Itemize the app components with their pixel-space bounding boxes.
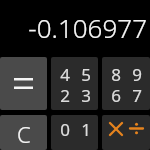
button[interactable]: 9 (126, 63, 147, 84)
button[interactable]: 4 (54, 63, 75, 84)
staticText: -0.106977 (28, 10, 147, 45)
button[interactable]: 0 (54, 118, 75, 139)
staticText: 7 (132, 84, 142, 105)
button[interactable]: 1 (75, 118, 96, 139)
button[interactable]: Equals (0, 57, 47, 110)
button[interactable]: 2 (54, 84, 75, 105)
staticText: 4 (60, 63, 70, 84)
staticText: 1 (81, 118, 91, 139)
button[interactable]: Multiply and divide (102, 115, 150, 150)
button[interactable]: -0.106977 (0, 0, 150, 57)
button[interactable]: 7 (126, 84, 147, 105)
staticText: C (17, 119, 31, 149)
button[interactable]: C (0, 115, 47, 150)
button[interactable]: 5 (75, 63, 96, 84)
button[interactable]: 8 (105, 63, 126, 84)
button[interactable]: 4 (51, 57, 98, 110)
button[interactable]: 8 (102, 57, 150, 110)
button[interactable]: 3 (75, 84, 96, 105)
staticText: 6 (111, 84, 121, 105)
button[interactable]: 6 (105, 84, 126, 105)
staticText: 8 (111, 63, 121, 84)
staticText: 3 (81, 84, 91, 105)
staticText: 2 (60, 84, 70, 105)
staticText: 9 (132, 63, 142, 84)
staticText: 0 (60, 118, 70, 139)
button[interactable]: 0 (51, 115, 98, 150)
staticText: 5 (81, 63, 91, 84)
